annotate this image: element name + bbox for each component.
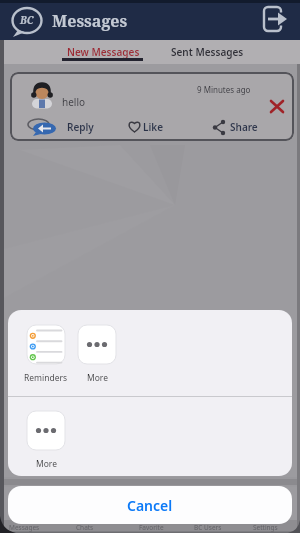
staticText: More [87,372,108,383]
staticText: 9 Minutes ago [197,84,251,95]
staticText: Chats [76,523,94,532]
staticText: More [36,458,57,469]
staticText: Share [230,120,258,134]
staticText: Like [143,120,164,134]
staticText: hello [62,95,86,109]
button[interactable] [258,4,292,36]
staticText: Reply [67,120,94,134]
button[interactable]: Reply [20,116,106,138]
button[interactable] [27,411,65,450]
button[interactable] [78,325,116,364]
staticText: BC Users [194,523,222,532]
button[interactable]: Like [122,116,170,138]
staticText: Reminders [24,372,68,383]
button[interactable]: Share [206,116,266,138]
button[interactable]: Cancel [8,486,292,524]
staticText: Messages [52,10,128,32]
staticText: New Messages [67,45,140,59]
staticText: Settings [253,523,278,532]
button[interactable]: New Messages [53,40,153,64]
staticText: BC [20,13,34,27]
staticText: Cancel [127,496,173,515]
button[interactable] [265,95,289,119]
button[interactable]: Sent Messages [157,40,257,64]
staticText: Sent Messages [171,45,244,59]
button[interactable] [27,325,65,364]
staticText: Favorite [139,523,164,532]
staticText: Messages [9,523,40,532]
